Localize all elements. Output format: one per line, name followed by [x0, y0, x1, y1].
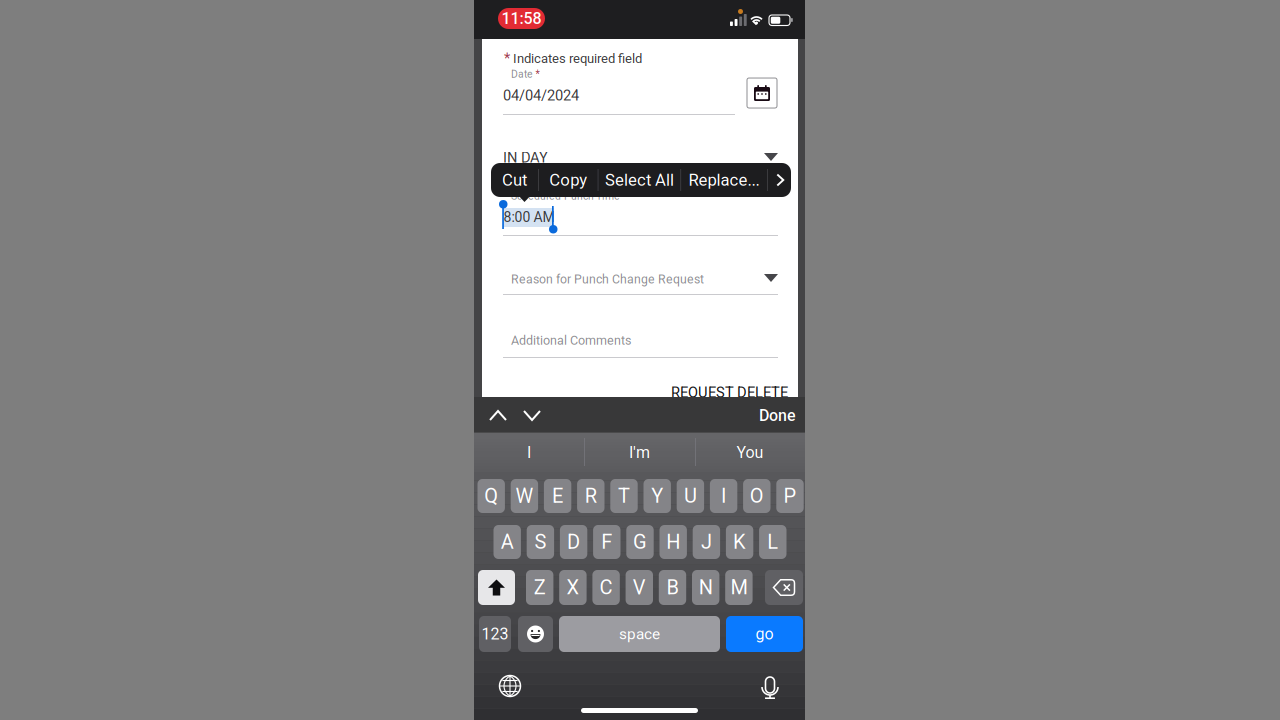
button[interactable]: H: [659, 525, 687, 559]
button[interactable]: A: [493, 525, 521, 559]
button[interactable]: J: [693, 525, 720, 559]
staticText: space: [619, 625, 660, 643]
staticText: 123: [481, 625, 508, 643]
button[interactable]: Z: [526, 570, 553, 605]
staticText: I: [721, 484, 726, 508]
staticText: 04/04/2024: [503, 87, 579, 104]
button[interactable]: D: [560, 525, 587, 559]
button[interactable]: Emoji: [518, 616, 553, 652]
button[interactable]: Q: [477, 479, 505, 513]
button[interactable]: U: [677, 479, 704, 513]
button[interactable]: Select All: [598, 163, 680, 197]
staticText: IN DAY: [503, 149, 548, 166]
button[interactable]: space: [559, 616, 720, 652]
staticText: R: [585, 484, 597, 508]
button[interactable]: X: [559, 570, 587, 605]
button[interactable]: REQUEST DELETE: [671, 384, 788, 401]
staticText: Additional Comments: [511, 333, 631, 348]
staticText: H: [666, 530, 680, 554]
staticText: Date: [511, 68, 533, 80]
button[interactable]: P: [776, 479, 804, 513]
staticText: L: [767, 530, 778, 554]
button[interactable]: R: [577, 479, 604, 513]
button[interactable]: 123: [479, 616, 511, 652]
button[interactable]: I: [474, 433, 584, 472]
button[interactable]: O: [743, 479, 770, 513]
staticText: U: [684, 484, 697, 508]
staticText: T: [618, 484, 630, 508]
button[interactable]: K: [726, 525, 753, 559]
button[interactable]: go: [726, 616, 803, 652]
button[interactable]: Copy: [539, 163, 598, 197]
staticText: Scheduled Punch Time: [511, 190, 620, 202]
button[interactable]: Dictate: [759, 671, 781, 697]
staticText: D: [567, 530, 580, 554]
staticText: B: [666, 576, 678, 599]
staticText: Done: [759, 406, 796, 425]
button[interactable]: S: [527, 525, 554, 559]
staticText: C: [600, 576, 613, 599]
staticText: W: [515, 484, 533, 508]
button[interactable]: T: [610, 479, 638, 513]
staticText: Reason for Punch Change Request: [511, 272, 704, 286]
staticText: Copy: [549, 170, 587, 190]
button[interactable]: G: [626, 525, 654, 559]
staticText: A: [501, 530, 514, 554]
button[interactable]: C: [592, 570, 620, 605]
button[interactable]: B: [659, 570, 686, 605]
staticText: I'm: [629, 443, 650, 462]
staticText: Cut: [502, 170, 527, 190]
staticText: S: [534, 530, 546, 554]
staticText: V: [633, 576, 646, 599]
button[interactable]: L: [759, 525, 786, 559]
staticText: J: [701, 530, 712, 554]
button[interactable]: V: [626, 570, 653, 605]
button[interactable]: F: [593, 525, 620, 559]
button[interactable]: Y: [643, 479, 671, 513]
button[interactable]: Change keyboard: [499, 675, 521, 697]
staticText: 11:58: [501, 9, 541, 28]
button[interactable]: I'm: [584, 433, 695, 472]
button[interactable]: E: [544, 479, 571, 513]
staticText: Z: [534, 576, 546, 599]
staticText: O: [750, 484, 764, 508]
button[interactable]: Next field: [520, 405, 544, 426]
button[interactable]: Done: [759, 405, 796, 426]
button[interactable]: Cut: [491, 163, 538, 197]
button[interactable]: W: [511, 479, 538, 513]
button[interactable]: Choose date: [747, 78, 777, 108]
staticText: M: [730, 576, 747, 599]
button[interactable]: Previous field: [486, 405, 510, 426]
staticText: Replace...: [689, 170, 760, 190]
staticText: N: [699, 576, 713, 599]
button[interactable]: Replace...: [681, 163, 767, 197]
staticText: Q: [484, 484, 498, 508]
staticText: X: [566, 576, 579, 599]
button[interactable]: M: [725, 570, 753, 605]
button[interactable]: Shift: [478, 570, 515, 605]
staticText: Indicates required field: [513, 51, 642, 66]
staticText: F: [601, 530, 612, 554]
staticText: *: [504, 50, 510, 67]
staticText: P: [783, 484, 796, 508]
staticText: REQUEST DELETE: [671, 384, 788, 401]
button[interactable]: Delete: [765, 570, 803, 605]
staticText: *: [535, 68, 539, 80]
staticText: You: [736, 443, 763, 462]
staticText: 8:00 AM: [503, 209, 554, 225]
staticText: K: [733, 530, 746, 554]
button[interactable]: I: [710, 479, 737, 513]
button[interactable]: N: [692, 570, 719, 605]
button[interactable]: More: [768, 163, 793, 197]
staticText: G: [633, 530, 647, 554]
staticText: I: [527, 443, 531, 462]
staticText: Select All: [605, 170, 674, 190]
staticText: E: [552, 484, 563, 508]
button[interactable]: You: [695, 433, 805, 472]
staticText: go: [755, 625, 773, 643]
staticText: Y: [651, 484, 663, 508]
